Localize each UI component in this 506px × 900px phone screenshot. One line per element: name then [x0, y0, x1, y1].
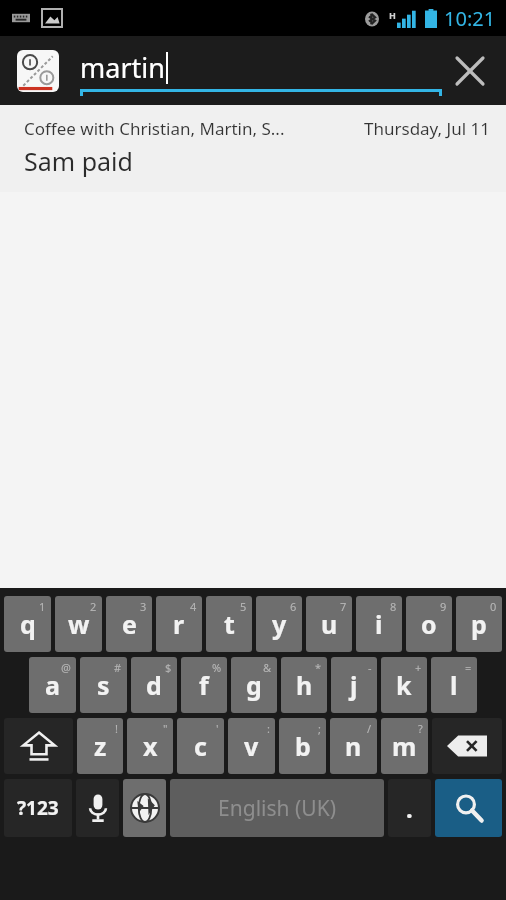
- button[interactable]: m: [381, 718, 428, 774]
- staticText: b: [295, 729, 311, 763]
- staticText: English (UK): [218, 794, 336, 823]
- staticText: 0: [490, 599, 497, 614]
- staticText: H: [389, 9, 396, 21]
- staticText: u: [321, 607, 338, 641]
- staticText: !: [115, 721, 118, 736]
- staticText: &: [263, 660, 272, 675]
- staticText: ;: [318, 721, 321, 736]
- button[interactable]: Clear search: [442, 43, 498, 99]
- button[interactable]: q: [4, 596, 51, 652]
- staticText: *: [315, 660, 322, 675]
- button[interactable]: u: [306, 596, 352, 652]
- staticText: ?: [418, 721, 423, 736]
- staticText: ": [163, 721, 168, 736]
- staticText: 2: [90, 599, 97, 614]
- button[interactable]: i: [356, 596, 402, 652]
- staticText: g: [246, 668, 262, 702]
- button[interactable]: y: [256, 596, 302, 652]
- staticText: martin: [80, 49, 165, 86]
- button[interactable]: l: [431, 657, 477, 713]
- button[interactable]: Shift: [4, 718, 73, 774]
- staticText: 6: [290, 599, 297, 614]
- staticText: Thursday, Jul 11: [364, 117, 490, 140]
- staticText: Coffee with Christian, Martin, S...: [24, 117, 285, 140]
- staticText: 9: [440, 599, 447, 614]
- staticText: r: [173, 607, 185, 641]
- button[interactable]: k: [381, 657, 427, 713]
- button[interactable]: o: [406, 596, 452, 652]
- staticText: :: [267, 721, 270, 736]
- staticText: t: [224, 607, 235, 641]
- staticText: p: [471, 607, 487, 641]
- button[interactable]: Change language: [123, 779, 166, 837]
- staticText: e: [122, 607, 137, 641]
- button[interactable]: h: [281, 657, 327, 713]
- staticText: $: [165, 660, 172, 675]
- button[interactable]: p: [456, 596, 502, 652]
- staticText: Sam paid: [24, 144, 133, 178]
- staticText: m: [392, 729, 417, 763]
- staticText: 1: [39, 599, 46, 614]
- staticText: 8: [390, 599, 397, 614]
- staticText: l: [450, 668, 458, 702]
- staticText: s: [97, 668, 110, 702]
- staticText: #: [114, 660, 122, 675]
- staticText: c: [194, 729, 207, 763]
- button[interactable]: a: [29, 657, 76, 713]
- button[interactable]: w: [55, 596, 102, 652]
- staticText: i: [375, 607, 383, 641]
- button[interactable]: x: [127, 718, 173, 774]
- button[interactable]: v: [228, 718, 275, 774]
- staticText: z: [94, 729, 107, 763]
- button[interactable]: n: [330, 718, 377, 774]
- staticText: d: [146, 668, 162, 702]
- staticText: ?123: [17, 795, 59, 821]
- button[interactable]: Voice input: [76, 779, 119, 837]
- button[interactable]: f: [181, 657, 227, 713]
- button[interactable]: g: [231, 657, 277, 713]
- button[interactable]: s: [80, 657, 127, 713]
- staticText: x: [143, 729, 158, 763]
- staticText: k: [396, 668, 412, 702]
- button[interactable]: c: [177, 718, 224, 774]
- button[interactable]: t: [206, 596, 252, 652]
- staticText: a: [45, 668, 60, 702]
- staticText: -: [368, 660, 372, 675]
- staticText: 5: [240, 599, 247, 614]
- staticText: n: [345, 729, 362, 763]
- staticText: 4: [190, 599, 197, 614]
- staticText: w: [68, 607, 90, 641]
- staticText: +: [415, 660, 422, 675]
- staticText: ': [216, 721, 219, 736]
- staticText: %: [212, 660, 222, 675]
- button[interactable]: r: [156, 596, 202, 652]
- button[interactable]: .: [388, 779, 431, 837]
- staticText: .: [406, 792, 413, 825]
- button[interactable]: Search: [435, 779, 502, 837]
- button[interactable]: b: [279, 718, 326, 774]
- button[interactable]: ?123: [4, 779, 72, 837]
- staticText: v: [244, 729, 259, 763]
- staticText: =: [465, 660, 472, 675]
- button[interactable]: d: [131, 657, 177, 713]
- staticText: 3: [140, 599, 147, 614]
- button[interactable]: Backspace: [432, 718, 502, 774]
- staticText: 7: [340, 599, 347, 614]
- staticText: f: [199, 668, 209, 702]
- staticText: /: [367, 721, 372, 736]
- staticText: j: [350, 668, 358, 702]
- button[interactable]: j: [331, 657, 377, 713]
- button[interactable]: Coffee with Christian, Martin, S...: [0, 105, 506, 192]
- button[interactable]: e: [106, 596, 152, 652]
- button[interactable]: z: [77, 718, 123, 774]
- button[interactable]: App icon, up: [14, 47, 62, 95]
- staticText: h: [296, 668, 313, 702]
- staticText: o: [421, 607, 437, 641]
- button[interactable]: English (UK): [170, 779, 384, 837]
- staticText: @: [61, 660, 71, 675]
- staticText: y: [272, 607, 287, 641]
- staticText: 10:21: [444, 5, 496, 32]
- staticText: q: [20, 607, 36, 641]
